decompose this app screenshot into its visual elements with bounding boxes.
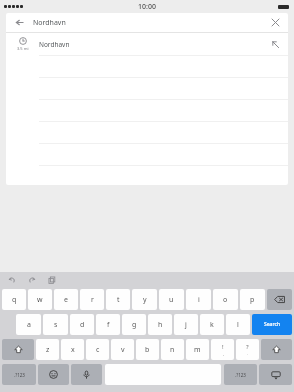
button[interactable]: .?123: [224, 364, 257, 385]
staticText: 3.5 mi: [17, 46, 29, 51]
staticText: ?: [246, 343, 249, 351]
button[interactable]: Back: [6, 13, 33, 32]
button[interactable]: .?123: [2, 364, 36, 385]
button[interactable]: j: [174, 314, 198, 335]
button[interactable]: Redo: [26, 274, 37, 285]
staticText: r: [91, 295, 94, 305]
button[interactable]: t: [106, 289, 130, 310]
staticText: h: [158, 320, 163, 330]
button[interactable]: v: [111, 339, 134, 360]
staticText: .?123: [235, 372, 246, 378]
staticText: c: [96, 345, 100, 355]
button[interactable]: Back: [6, 13, 288, 32]
button[interactable]: x: [61, 339, 84, 360]
button[interactable]: b: [136, 339, 159, 360]
button[interactable]: n: [161, 339, 184, 360]
button[interactable]: 3.5 mi: [6, 33, 288, 55]
button[interactable]: y: [132, 289, 157, 310]
button[interactable]: Insert suggestion: [262, 33, 288, 55]
staticText: e: [64, 295, 68, 305]
button[interactable]: Voice input: [71, 364, 102, 385]
button[interactable]: Undo: [6, 274, 17, 285]
staticText: j: [185, 320, 187, 330]
button[interactable]: ?: [236, 339, 259, 360]
button[interactable]: d: [70, 314, 94, 335]
button[interactable]: !: [211, 339, 234, 360]
staticText: y: [143, 295, 147, 305]
staticText: .?123: [14, 372, 25, 378]
button[interactable]: q: [2, 289, 26, 310]
staticText: v: [121, 345, 125, 355]
staticText: w: [37, 295, 43, 305]
button[interactable]: h: [148, 314, 172, 335]
staticText: s: [54, 320, 58, 330]
button[interactable]: l: [226, 314, 250, 335]
staticText: d: [80, 320, 85, 330]
staticText: m: [194, 345, 201, 355]
button[interactable]: Clear: [262, 13, 288, 32]
staticText: o: [223, 295, 228, 305]
staticText: l: [237, 320, 239, 330]
button[interactable]: i: [186, 289, 211, 310]
staticText: Nordhavn: [33, 18, 66, 28]
button[interactable]: Hide keyboard: [259, 364, 292, 385]
button[interactable]: Shift: [261, 339, 292, 360]
staticText: 10:00: [138, 2, 156, 12]
button[interactable]: z: [36, 339, 59, 360]
staticText: a: [27, 320, 31, 330]
button[interactable]: Copy: [46, 274, 57, 285]
button[interactable]: [6, 165, 288, 185]
staticText: n: [170, 345, 175, 355]
staticText: g: [132, 320, 137, 330]
staticText: x: [71, 345, 75, 355]
staticText: i: [198, 295, 200, 305]
button[interactable]: Emoji: [38, 364, 69, 385]
button[interactable]: g: [122, 314, 146, 335]
staticText: u: [169, 295, 174, 305]
button[interactable]: k: [200, 314, 224, 335]
button[interactable]: e: [54, 289, 78, 310]
button[interactable]: w: [28, 289, 52, 310]
staticText: ,: [223, 351, 224, 356]
staticText: q: [12, 295, 17, 305]
button[interactable]: o: [213, 289, 238, 310]
staticText: Nordhavn: [39, 40, 70, 49]
staticText: .: [247, 351, 248, 356]
button[interactable]: Shift: [2, 339, 34, 360]
staticText: f: [107, 320, 110, 330]
button[interactable]: r: [80, 289, 104, 310]
button[interactable]: f: [96, 314, 120, 335]
staticText: t: [117, 295, 120, 305]
button[interactable]: c: [86, 339, 109, 360]
staticText: z: [46, 345, 50, 355]
staticText: Search: [264, 321, 281, 328]
button[interactable]: u: [159, 289, 184, 310]
staticText: p: [250, 295, 255, 305]
button[interactable]: Backspace: [267, 289, 292, 310]
button[interactable]: p: [240, 289, 265, 310]
button[interactable]: s: [43, 314, 68, 335]
staticText: k: [210, 320, 214, 330]
staticText: b: [145, 345, 150, 355]
button[interactable]: a: [16, 314, 41, 335]
staticText: !: [222, 343, 224, 351]
button[interactable]: Search: [252, 314, 292, 335]
button[interactable]: m: [186, 339, 209, 360]
